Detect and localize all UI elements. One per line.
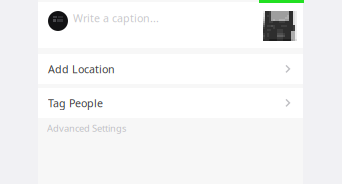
staticText: Tag People (48, 96, 103, 110)
staticText: Advanced Settings (47, 122, 126, 134)
button[interactable]: Tag People (38, 88, 303, 118)
button[interactable]: Advanced Settings (38, 118, 303, 136)
button[interactable]: Add Location (38, 54, 303, 84)
staticText: Write a caption... (73, 11, 159, 25)
button[interactable]: Write a caption... (38, 2, 303, 48)
staticText: Add Location (48, 62, 115, 76)
